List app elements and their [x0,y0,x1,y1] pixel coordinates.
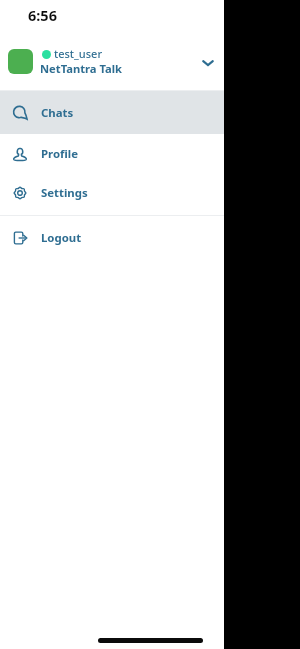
staticText: NetTantra Talk [40,61,122,76]
button[interactable]: Logout [0,216,224,259]
staticText: test_user [54,46,103,61]
button[interactable]: Expand account [197,52,219,74]
button[interactable]: Settings [0,173,224,212]
staticText: Settings [41,185,88,201]
staticText: Logout [41,230,82,246]
button[interactable]: test_user [0,32,224,90]
staticText: 6:56 [28,5,57,25]
staticText: Chats [41,105,74,121]
button[interactable]: Chats [0,91,224,134]
button[interactable]: Profile [0,134,224,173]
staticText: Profile [41,146,79,162]
